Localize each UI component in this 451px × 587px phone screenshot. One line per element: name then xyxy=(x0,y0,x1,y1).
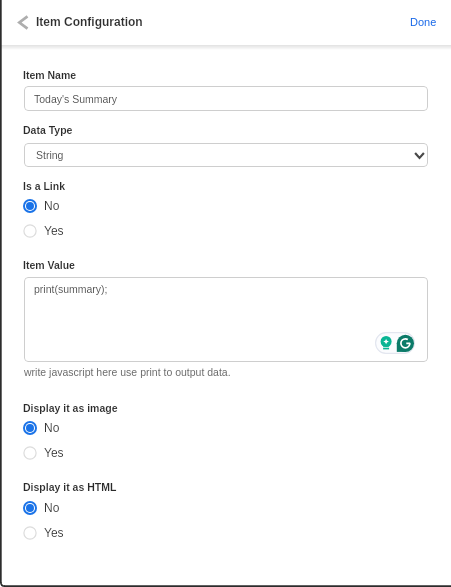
staticText: Yes xyxy=(44,446,64,459)
staticText: String xyxy=(36,149,64,161)
staticText: Item Name xyxy=(23,69,77,81)
staticText: No xyxy=(44,501,60,514)
staticText: Yes xyxy=(44,526,64,539)
staticText: Data Type xyxy=(23,124,73,136)
staticText: Done xyxy=(410,16,437,28)
staticText: Item Value xyxy=(23,259,75,271)
button[interactable]: print(summary); xyxy=(24,277,428,362)
staticText: Today's Summary xyxy=(34,93,118,105)
staticText: Display it as image xyxy=(23,402,118,414)
button[interactable]: No xyxy=(23,418,118,438)
staticText: No xyxy=(44,421,60,434)
button[interactable]: String xyxy=(24,143,428,167)
button[interactable]: Today's Summary xyxy=(24,86,428,111)
button[interactable]: Back xyxy=(10,9,36,35)
button[interactable]: No xyxy=(23,196,118,216)
staticText: Yes xyxy=(44,224,64,237)
staticText: Display it as HTML xyxy=(23,481,117,493)
button[interactable]: Yes xyxy=(23,221,118,241)
staticText: No xyxy=(44,199,60,212)
button[interactable]: Grammarly suggestions xyxy=(375,332,415,354)
button[interactable]: Done xyxy=(410,16,437,28)
staticText: Item Configuration xyxy=(36,15,143,28)
button[interactable]: Yes xyxy=(23,443,118,463)
staticText: write javascript here use print to outpu… xyxy=(24,366,231,378)
staticText: Is a Link xyxy=(23,180,66,192)
button[interactable]: No xyxy=(23,498,118,518)
staticText: print(summary); xyxy=(34,283,108,295)
button[interactable]: Yes xyxy=(23,523,118,543)
